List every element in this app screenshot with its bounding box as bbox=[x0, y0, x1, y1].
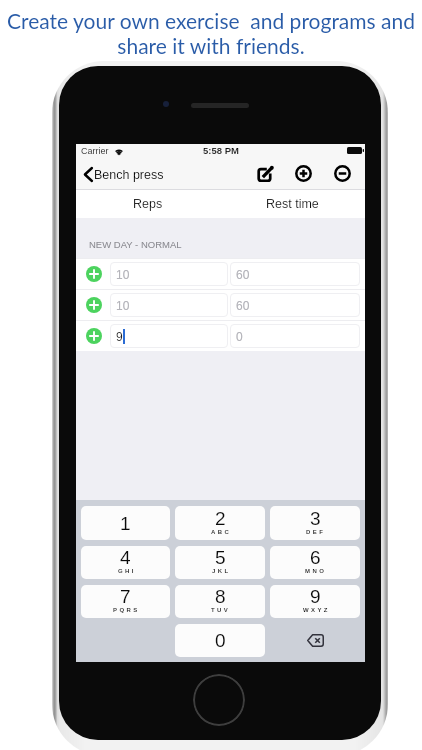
staticText: 0 bbox=[215, 630, 226, 651]
staticText: 9 bbox=[310, 586, 321, 607]
button[interactable]: Backspace bbox=[270, 624, 360, 657]
button[interactable]: Add bbox=[291, 161, 316, 186]
staticText: 60 bbox=[236, 268, 250, 281]
staticText: NEW DAY - NORMAL bbox=[89, 239, 182, 250]
button[interactable]: 1 bbox=[81, 506, 170, 540]
staticText: GHI bbox=[118, 568, 136, 575]
button[interactable]: 5 bbox=[175, 546, 265, 579]
staticText: 10 bbox=[116, 268, 130, 281]
button[interactable]: 8 bbox=[175, 585, 265, 618]
button[interactable]: 60 bbox=[230, 262, 360, 286]
staticText: 5 bbox=[215, 547, 226, 568]
staticText: 3 bbox=[310, 508, 321, 529]
staticText: 60 bbox=[236, 299, 250, 312]
button[interactable]: 60 bbox=[230, 293, 360, 317]
staticText: 1 bbox=[120, 513, 131, 534]
button[interactable]: 2 bbox=[175, 506, 265, 540]
staticText: 7 bbox=[120, 586, 131, 607]
staticText: 9 bbox=[116, 330, 123, 343]
button[interactable]: 7 bbox=[81, 585, 170, 618]
staticText: 5:58 PM bbox=[203, 145, 239, 156]
button[interactable]: 6 bbox=[270, 546, 360, 579]
button[interactable]: Edit bbox=[252, 162, 277, 187]
staticText: share it with friends. bbox=[117, 33, 305, 58]
button[interactable]: 9 bbox=[110, 324, 228, 348]
staticText: DEF bbox=[306, 529, 326, 536]
staticText: 6 bbox=[310, 547, 321, 568]
staticText: PQRS bbox=[113, 607, 140, 614]
staticText: 10 bbox=[116, 299, 130, 312]
button[interactable]: Add set bbox=[86, 266, 102, 282]
button[interactable]: 9 bbox=[270, 585, 360, 618]
button[interactable]: 4 bbox=[81, 546, 170, 579]
button[interactable]: 10 bbox=[110, 262, 228, 286]
button[interactable]: Add set bbox=[86, 297, 102, 313]
staticText: 0 bbox=[236, 330, 243, 343]
staticText: 2 bbox=[215, 508, 226, 529]
staticText: Bench press bbox=[94, 168, 164, 182]
staticText: Rest time bbox=[266, 197, 319, 211]
staticText: 8 bbox=[215, 586, 226, 607]
button[interactable]: 3 bbox=[270, 506, 360, 540]
button[interactable]: 0 bbox=[230, 324, 360, 348]
staticText: ABC bbox=[211, 529, 232, 536]
button[interactable]: Bench press bbox=[76, 162, 170, 187]
staticText: MNO bbox=[305, 568, 327, 575]
staticText: Carrier bbox=[81, 146, 109, 156]
staticText: Reps bbox=[133, 197, 163, 211]
staticText: WXYZ bbox=[303, 607, 330, 614]
staticText: JKL bbox=[212, 568, 231, 575]
button[interactable]: 10 bbox=[110, 293, 228, 317]
staticText: 4 bbox=[120, 547, 131, 568]
staticText: Create your own exercise and programs an… bbox=[7, 8, 415, 33]
button[interactable]: 0 bbox=[175, 624, 265, 657]
staticText: TUV bbox=[211, 607, 231, 614]
button[interactable]: Remove bbox=[330, 161, 355, 186]
button[interactable]: Add set bbox=[86, 328, 102, 344]
